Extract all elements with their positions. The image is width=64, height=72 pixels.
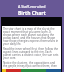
staticText: Notice the clusters, the oppositions and… (3, 61, 60, 68)
staticText: A Staff-recruited (18, 4, 46, 9)
staticText: Read the inner wheel first, then follow … (3, 47, 60, 60)
staticText: Birth Chart (18, 10, 46, 17)
staticText: The star chart is a map of the sky at th… (3, 27, 60, 46)
